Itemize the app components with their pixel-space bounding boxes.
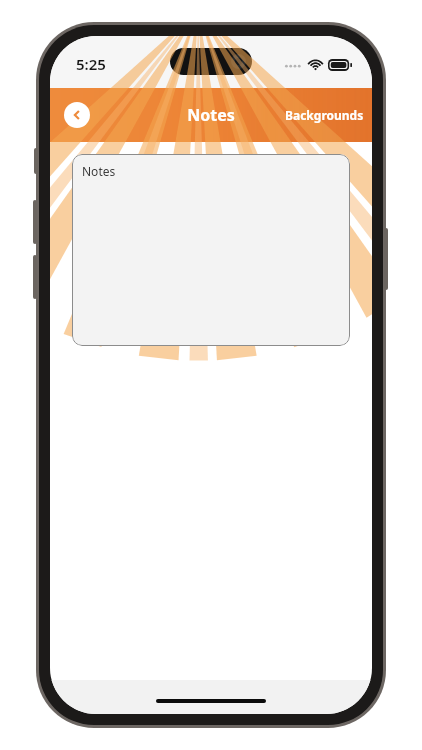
button[interactable]: Notes [72, 154, 350, 346]
staticText: Backgrounds [285, 107, 364, 123]
staticText: 5:25 [76, 54, 106, 74]
staticText: Notes [187, 104, 235, 126]
button[interactable]: Backgrounds [277, 101, 372, 129]
staticText: Notes [82, 163, 116, 179]
button[interactable]: Back [64, 102, 90, 128]
